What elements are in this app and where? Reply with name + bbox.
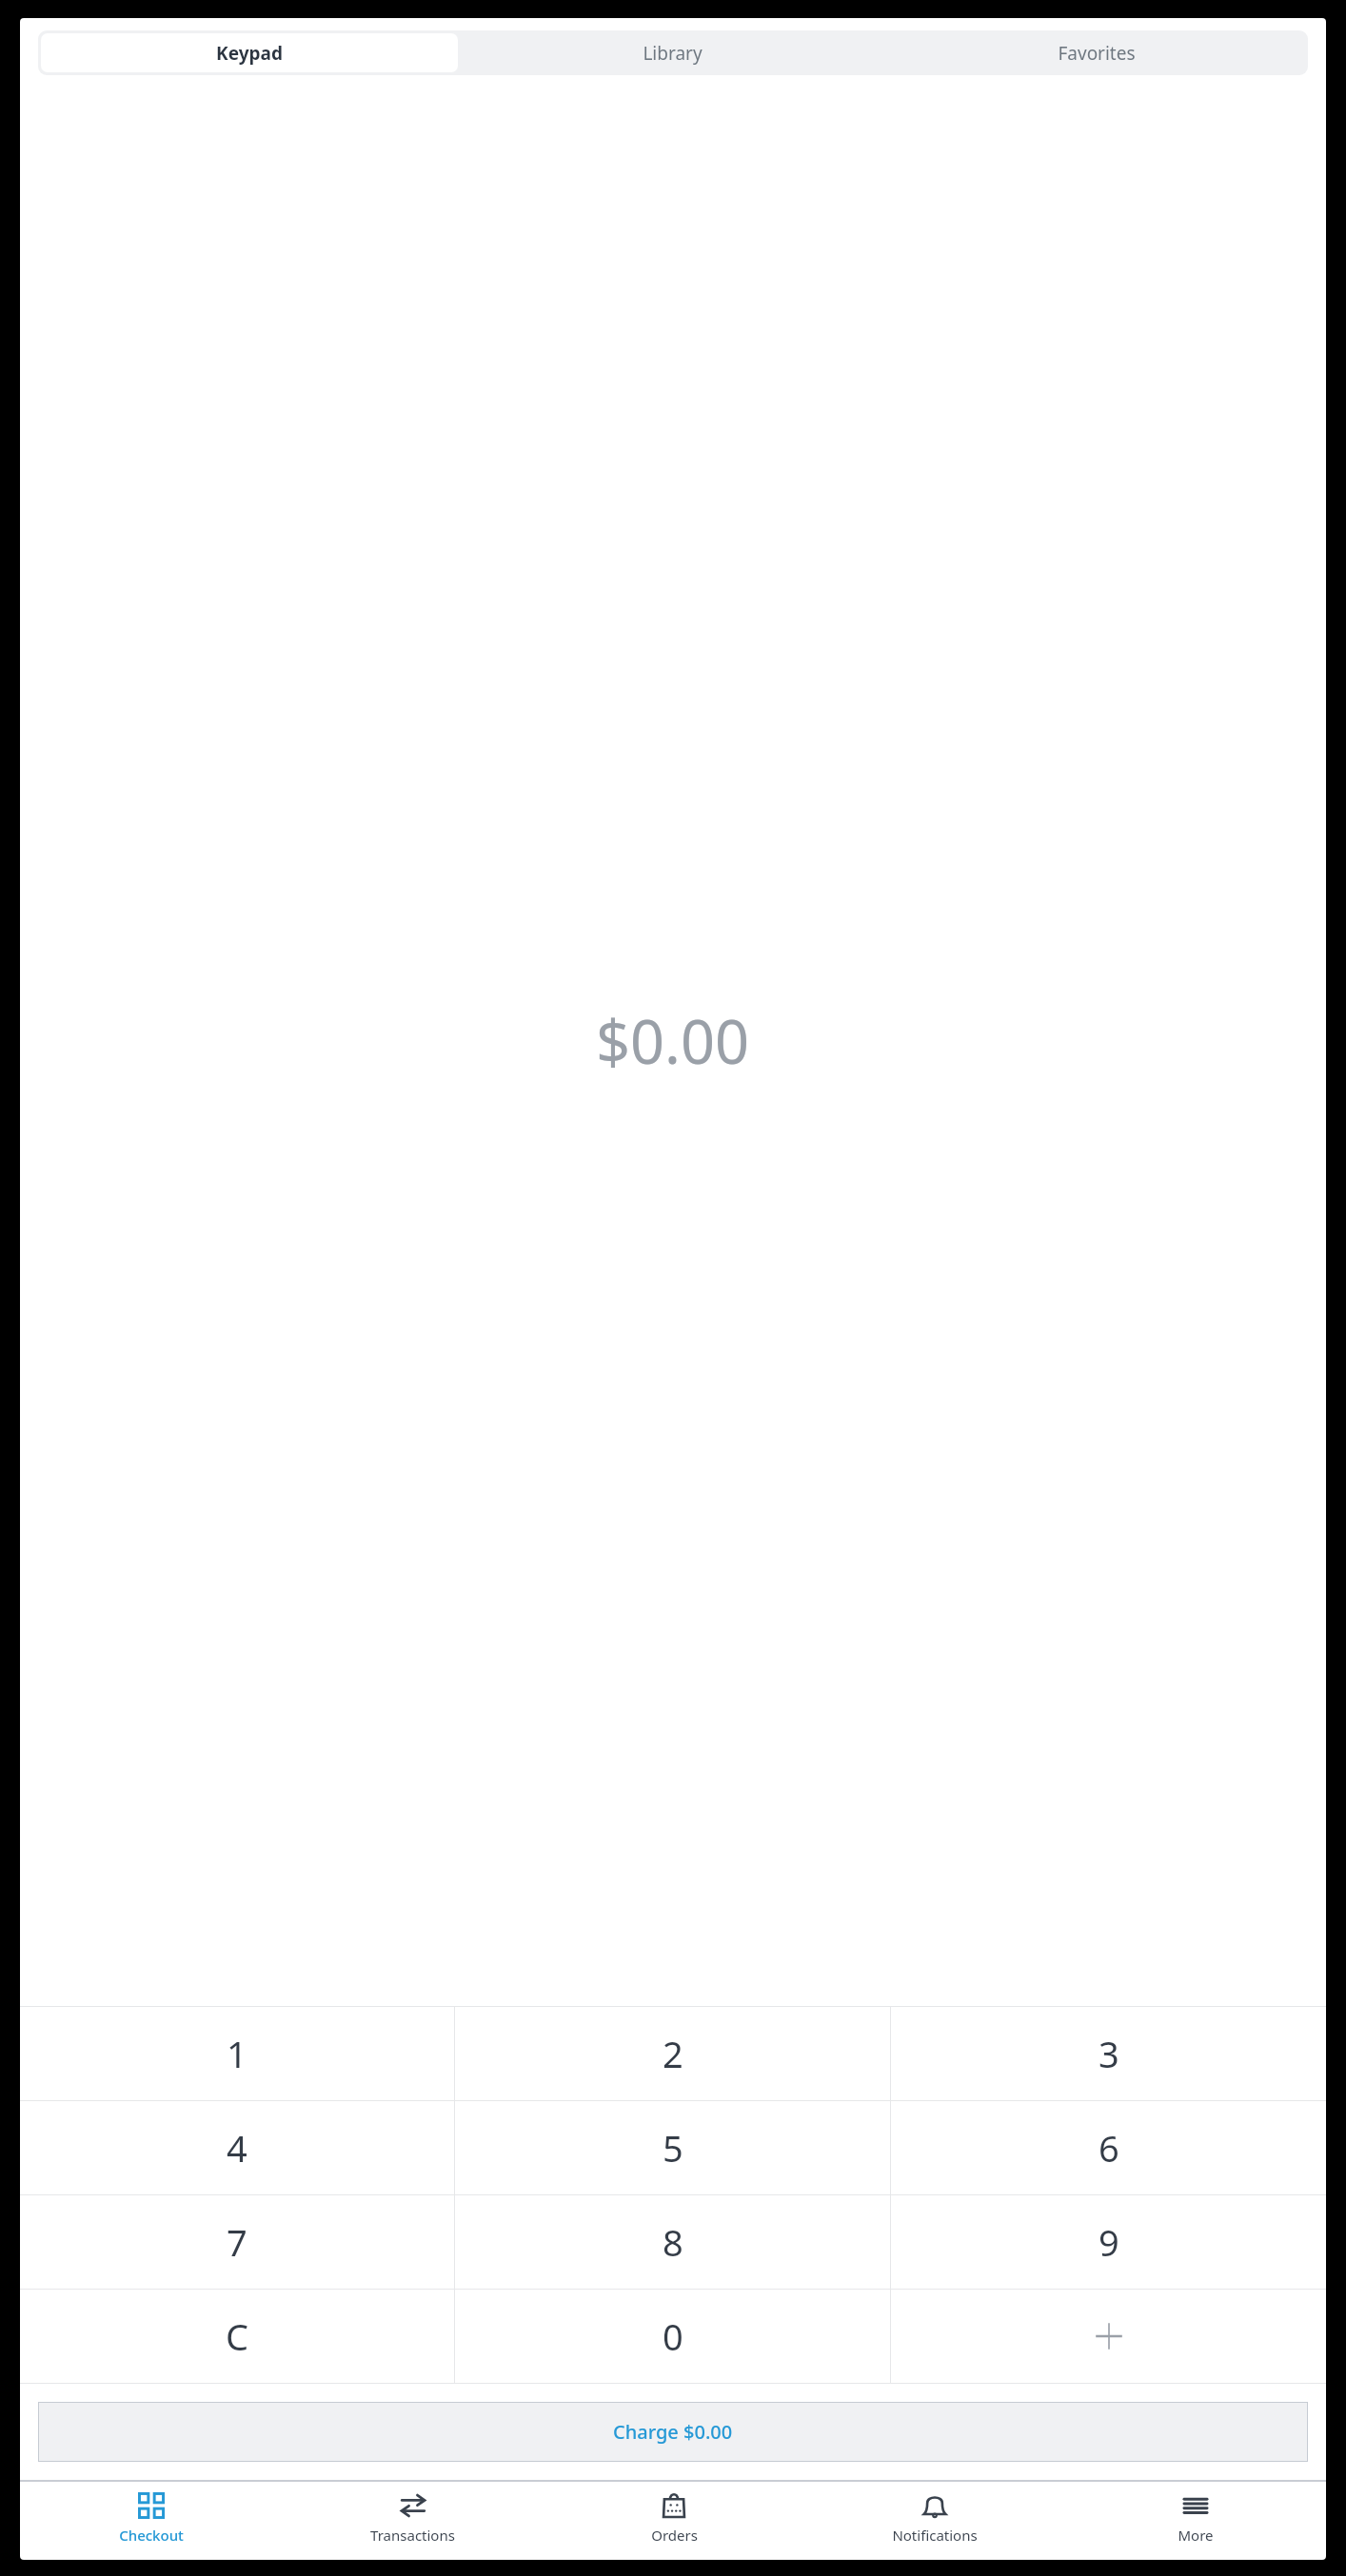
button[interactable]: Transactions [282, 2482, 544, 2560]
button[interactable]: 4 [20, 2101, 454, 2194]
staticText: More [1178, 2526, 1214, 2545]
other: Orders [661, 2492, 687, 2519]
button[interactable]: 6 [891, 2101, 1326, 2194]
staticText: 5 [663, 2123, 683, 2173]
staticText: 3 [1099, 2029, 1119, 2078]
staticText: 9 [1099, 2217, 1119, 2267]
button[interactable]: 3 [891, 2007, 1326, 2100]
staticText: 6 [1099, 2123, 1119, 2173]
button[interactable]: 9 [891, 2195, 1326, 2289]
button[interactable]: 5 [455, 2101, 890, 2194]
staticText: Keypad [216, 41, 283, 66]
staticText: Checkout [119, 2526, 184, 2545]
button[interactable]: Charge $0.00 [38, 2402, 1308, 2462]
staticText: 0 [663, 2311, 683, 2361]
button[interactable]: 0 [455, 2290, 890, 2383]
button[interactable]: Checkout [20, 2482, 282, 2560]
button[interactable]: Notifications [804, 2482, 1065, 2560]
other: Checkout [138, 2492, 165, 2519]
button[interactable]: Library [464, 33, 881, 72]
staticText: 8 [663, 2217, 683, 2267]
button[interactable]: Keypad [41, 33, 458, 72]
staticText: 7 [227, 2217, 247, 2267]
staticText: Library [643, 41, 703, 66]
button[interactable]: 2 [455, 2007, 890, 2100]
other: Notifications [921, 2492, 948, 2519]
button[interactable] [891, 2290, 1326, 2383]
other: More [1182, 2492, 1209, 2519]
staticText: Notifications [892, 2526, 978, 2545]
button[interactable]: C [20, 2290, 454, 2383]
staticText: Charge $0.00 [613, 2419, 733, 2445]
button[interactable]: 1 [20, 2007, 454, 2100]
staticText: $0.00 [596, 1000, 750, 1082]
staticText: Favorites [1058, 41, 1136, 66]
button[interactable]: Favorites [887, 33, 1305, 72]
button[interactable]: More [1065, 2482, 1326, 2560]
button[interactable]: 7 [20, 2195, 454, 2289]
staticText: Transactions [370, 2526, 455, 2545]
staticText: Orders [651, 2526, 698, 2545]
staticText: 2 [663, 2029, 683, 2078]
staticText: 4 [227, 2123, 247, 2173]
staticText: 1 [227, 2029, 247, 2078]
staticText: C [226, 2311, 249, 2361]
other: Transactions [400, 2492, 426, 2519]
button[interactable]: 8 [455, 2195, 890, 2289]
button[interactable]: Orders [544, 2482, 804, 2560]
